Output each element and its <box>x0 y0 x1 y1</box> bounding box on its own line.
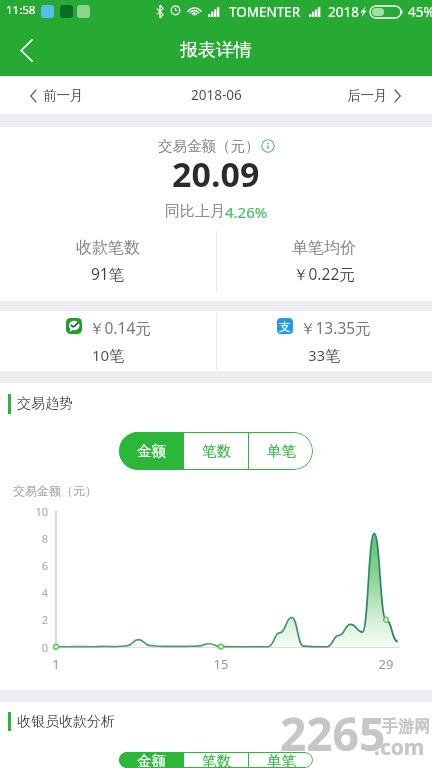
staticText: 前一月 <box>43 87 84 104</box>
staticText: 金额 <box>137 752 166 768</box>
staticText: 报表详情 <box>180 39 252 62</box>
staticText: 20.09 <box>172 151 260 197</box>
staticText: 4 <box>24 585 48 600</box>
staticText: 2 <box>24 612 48 627</box>
button[interactable]: Back <box>6 30 46 70</box>
staticText: 单笔 <box>267 752 296 768</box>
staticText: 91笔 <box>91 263 125 284</box>
button[interactable]: 笔数 <box>184 432 248 470</box>
button[interactable]: 金额 <box>119 752 183 768</box>
button[interactable]: 收款笔数 <box>0 238 216 284</box>
staticText: 收银员收款分析 <box>17 713 115 731</box>
staticText: 交易趋势 <box>17 395 73 413</box>
button[interactable]: 单笔 <box>249 432 313 470</box>
staticText: 0 <box>24 640 48 655</box>
staticText: 2265 <box>280 702 386 765</box>
staticText: 10 <box>24 504 48 519</box>
staticText: 交易金额（元） <box>13 483 97 498</box>
staticText: 4.26% <box>225 202 268 222</box>
staticText: 手游网 <box>382 717 430 737</box>
staticText: 10笔 <box>92 345 125 365</box>
staticText: ￥13.35元 <box>300 317 371 338</box>
staticText: 11:58 <box>6 2 36 18</box>
staticText: 45% <box>408 3 432 21</box>
staticText: 15 <box>206 655 236 673</box>
button[interactable]: 前一月 <box>30 87 84 104</box>
staticText: 2018 <box>328 3 359 21</box>
button[interactable]: 笔数 <box>184 752 248 768</box>
staticText: 同比上月 <box>165 202 225 221</box>
staticText: 支 <box>279 319 291 334</box>
staticText: 单笔均价 <box>292 238 356 258</box>
button[interactable]: ￥0.14元 <box>0 311 216 365</box>
staticText: 33笔 <box>308 345 341 365</box>
staticText: 6 <box>24 558 48 573</box>
staticText: 2018-06 <box>191 86 242 104</box>
staticText: .com <box>374 733 425 762</box>
button[interactable]: 单笔均价 <box>216 238 432 284</box>
staticText: 笔数 <box>202 442 231 460</box>
staticText: 笔数 <box>202 752 231 768</box>
staticText: 单笔 <box>267 442 296 460</box>
staticText: 8 <box>24 531 48 546</box>
staticText: TOMENTER <box>229 3 301 21</box>
staticText: 金额 <box>137 442 166 460</box>
button[interactable]: 单笔 <box>249 752 313 768</box>
staticText: ￥0.14元 <box>89 317 151 338</box>
staticText: 29 <box>371 655 401 673</box>
staticText: 交易金额（元） <box>158 137 260 155</box>
staticText: 1 <box>41 655 71 673</box>
staticText: 后一月 <box>347 87 388 104</box>
button[interactable]: 金额 <box>119 432 183 470</box>
button[interactable]: 后一月 <box>347 87 401 104</box>
button[interactable]: 支 <box>216 311 432 365</box>
staticText: 收款笔数 <box>76 238 140 258</box>
staticText: ￥0.22元 <box>293 263 355 284</box>
